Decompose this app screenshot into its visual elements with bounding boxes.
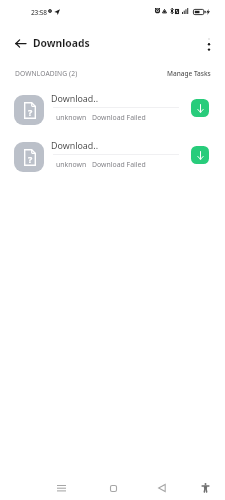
staticText: unknown: [56, 113, 87, 122]
staticText: Download..: [51, 92, 99, 104]
staticText: Manage Tasks: [167, 69, 211, 78]
staticText: ?: [28, 153, 33, 165]
button[interactable]: Resume download: [191, 99, 209, 117]
staticText: 23:58: [31, 8, 47, 17]
button[interactable]: Accessibility: [196, 478, 214, 496]
staticText: ?: [28, 106, 33, 118]
button[interactable]: More options: [198, 32, 220, 54]
staticText: Download..: [51, 139, 99, 151]
button[interactable]: Recents: [52, 479, 70, 497]
button[interactable]: Manage Tasks: [165, 66, 213, 81]
button[interactable]: ?: [0, 91, 225, 129]
staticText: Download Failed: [92, 113, 146, 122]
button[interactable]: Back: [153, 479, 171, 497]
button[interactable]: ?: [0, 138, 225, 176]
button[interactable]: Home: [104, 479, 122, 497]
staticText: DOWNLOADING (2): [15, 69, 78, 78]
button[interactable]: Back: [9, 32, 31, 54]
button[interactable]: Resume download: [191, 146, 209, 164]
staticText: unknown: [56, 160, 87, 169]
staticText: Download Failed: [92, 160, 146, 169]
staticText: Downloads: [33, 36, 90, 50]
